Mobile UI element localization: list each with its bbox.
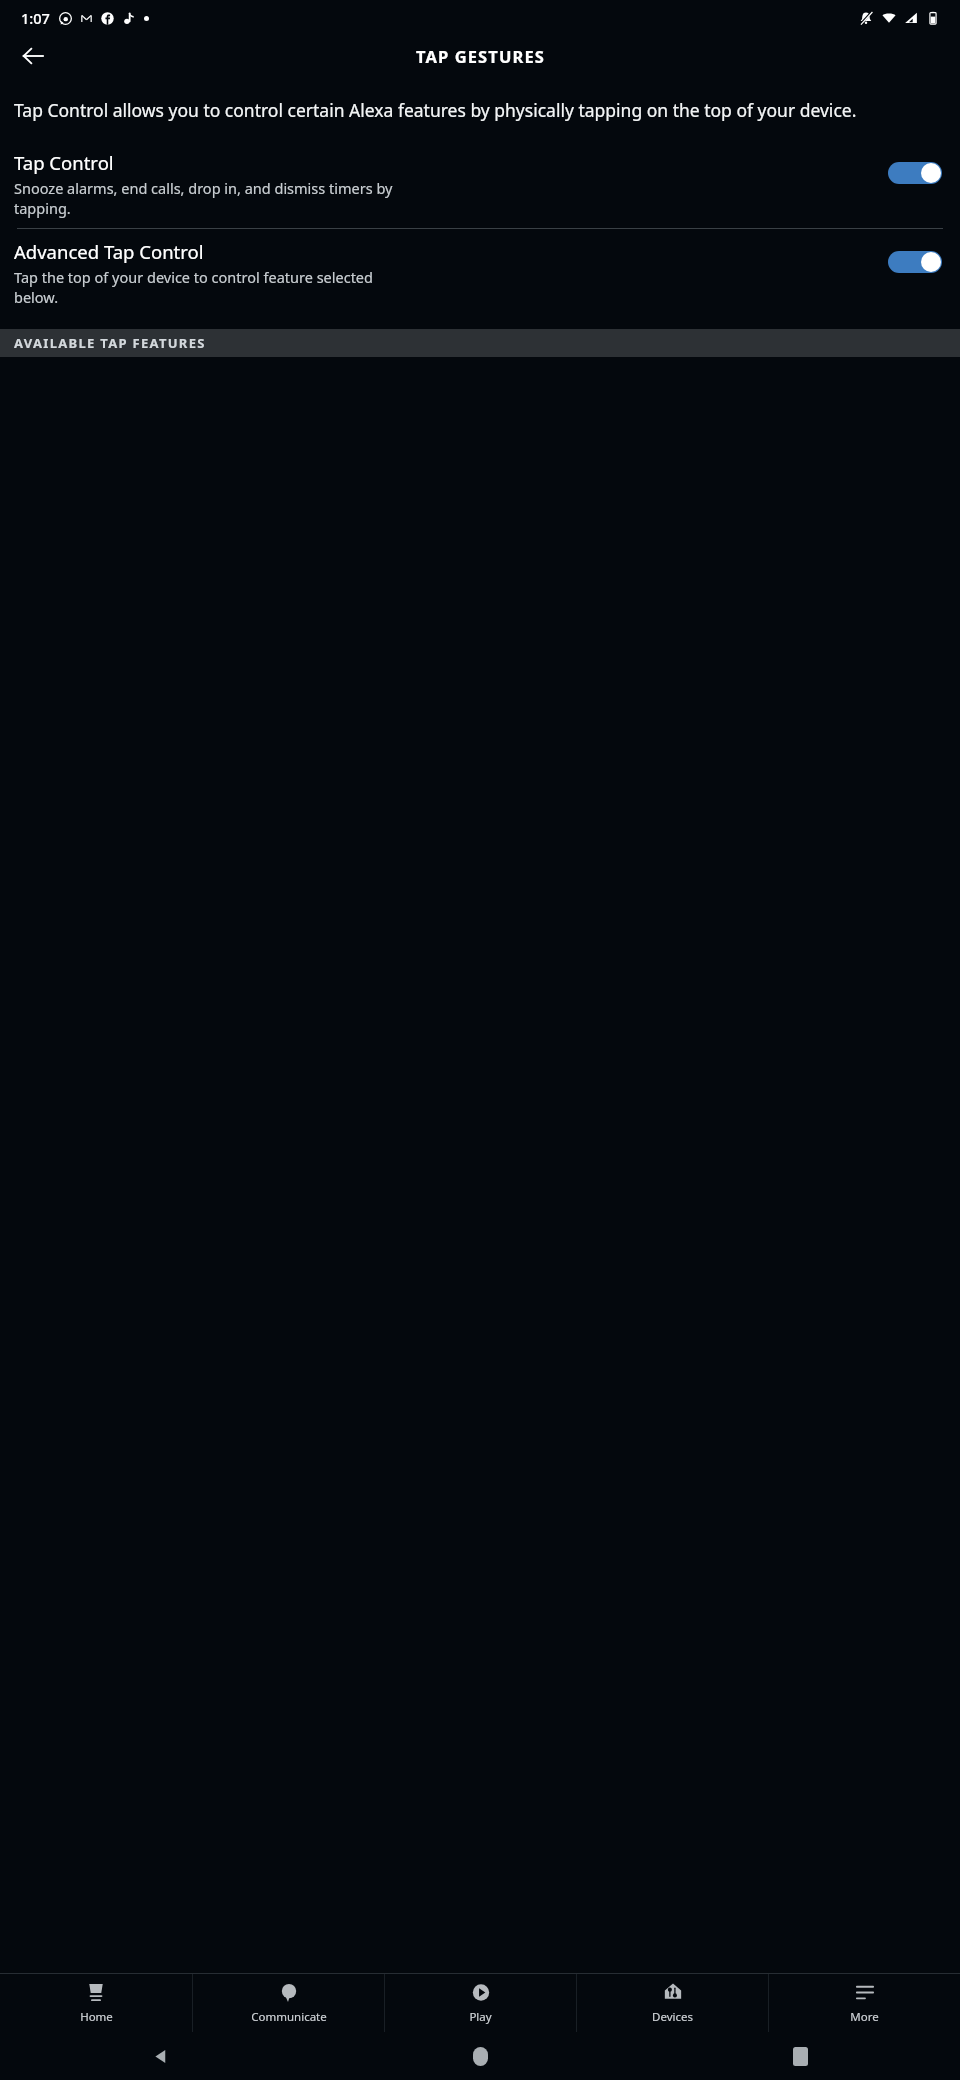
staticText: Communicate [251, 2009, 327, 2025]
button[interactable]: Toggle on [888, 251, 942, 273]
staticText: Tap Control [14, 150, 114, 175]
staticText: Play [469, 2009, 492, 2025]
button[interactable]: Devices [577, 1974, 768, 2032]
staticText: 1:07 [21, 8, 50, 28]
button[interactable]: More [769, 1974, 960, 2032]
staticText: AVAILABLE TAP FEATURES [14, 334, 206, 352]
staticText: Snooze alarms, end calls, drop in, and d… [14, 178, 393, 218]
button[interactable]: Recent apps [778, 2034, 822, 2078]
staticText: Home [80, 2009, 113, 2025]
button[interactable]: Home [458, 2034, 502, 2078]
staticText: Tap Control allows you to control certai… [14, 98, 857, 122]
button[interactable]: Communicate [193, 1974, 384, 2032]
button[interactable]: Advanced Tap Control [0, 229, 960, 317]
staticText: Tap the top of your device to control fe… [14, 267, 373, 307]
staticText: More [850, 2009, 879, 2025]
button[interactable]: Home [0, 1974, 192, 2032]
button[interactable]: Toggle on [888, 162, 942, 184]
staticText: Devices [652, 2009, 693, 2025]
staticText: Advanced Tap Control [14, 239, 204, 264]
button[interactable]: Back [138, 2034, 182, 2078]
button[interactable]: Back [10, 36, 56, 76]
button[interactable]: Play [385, 1974, 576, 2032]
staticText: TAP GESTURES [416, 45, 545, 67]
button[interactable]: Tap Control [0, 140, 960, 228]
